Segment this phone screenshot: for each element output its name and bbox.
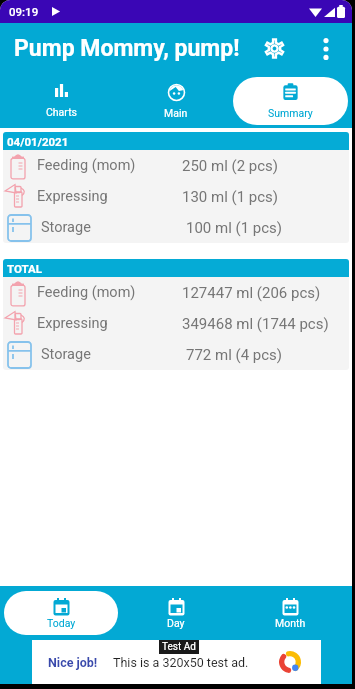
button[interactable]: More options	[306, 23, 346, 74]
button[interactable]: Feeding (mom)	[3, 150, 349, 181]
staticText: 130 ml (1 pcs)	[182, 188, 349, 206]
staticText: 04/01/2021	[7, 135, 69, 148]
staticText: Expressing	[37, 315, 182, 332]
button[interactable]: Nice job!	[32, 640, 321, 684]
staticText: Day	[167, 617, 185, 629]
staticText: Test Ad	[162, 641, 196, 653]
button[interactable]: Summary	[233, 77, 348, 125]
staticText: Expressing	[37, 188, 182, 205]
staticText: Today	[47, 617, 76, 629]
button[interactable]: Charts	[4, 77, 118, 125]
staticText: 09:19	[9, 5, 39, 18]
staticText: TOTAL	[7, 262, 42, 275]
staticText: 100 ml (1 pcs)	[186, 219, 349, 237]
button[interactable]: Expressing	[3, 181, 349, 212]
staticText: 772 ml (4 pcs)	[186, 346, 349, 364]
staticText: Storage	[41, 346, 186, 363]
staticText: Storage	[41, 219, 186, 236]
staticText: Charts	[46, 106, 77, 118]
staticText: 349468 ml (1744 pcs)	[182, 315, 349, 333]
staticText: 250 ml (2 pcs)	[182, 157, 349, 175]
button[interactable]: Day	[118, 591, 233, 635]
staticText: Pump Mommy, pump!	[14, 35, 240, 62]
staticText: This is a 320x50 test ad.	[113, 655, 249, 670]
staticText: Nice job!	[48, 655, 98, 670]
button[interactable]: Settings	[252, 23, 296, 74]
button[interactable]: Storage	[3, 212, 349, 243]
staticText: Summary	[268, 107, 313, 119]
button[interactable]: Today	[4, 591, 118, 635]
staticText: Main	[164, 107, 188, 119]
button[interactable]: Main	[118, 77, 233, 125]
staticText: Feeding (mom)	[37, 284, 182, 301]
staticText: Month	[275, 617, 306, 629]
button[interactable]: Month	[233, 591, 348, 635]
button[interactable]: Storage	[3, 339, 349, 370]
button[interactable]: Expressing	[3, 308, 349, 339]
staticText: Feeding (mom)	[37, 157, 182, 174]
button[interactable]: Feeding (mom)	[3, 277, 349, 308]
staticText: 127447 ml (206 pcs)	[182, 284, 349, 302]
